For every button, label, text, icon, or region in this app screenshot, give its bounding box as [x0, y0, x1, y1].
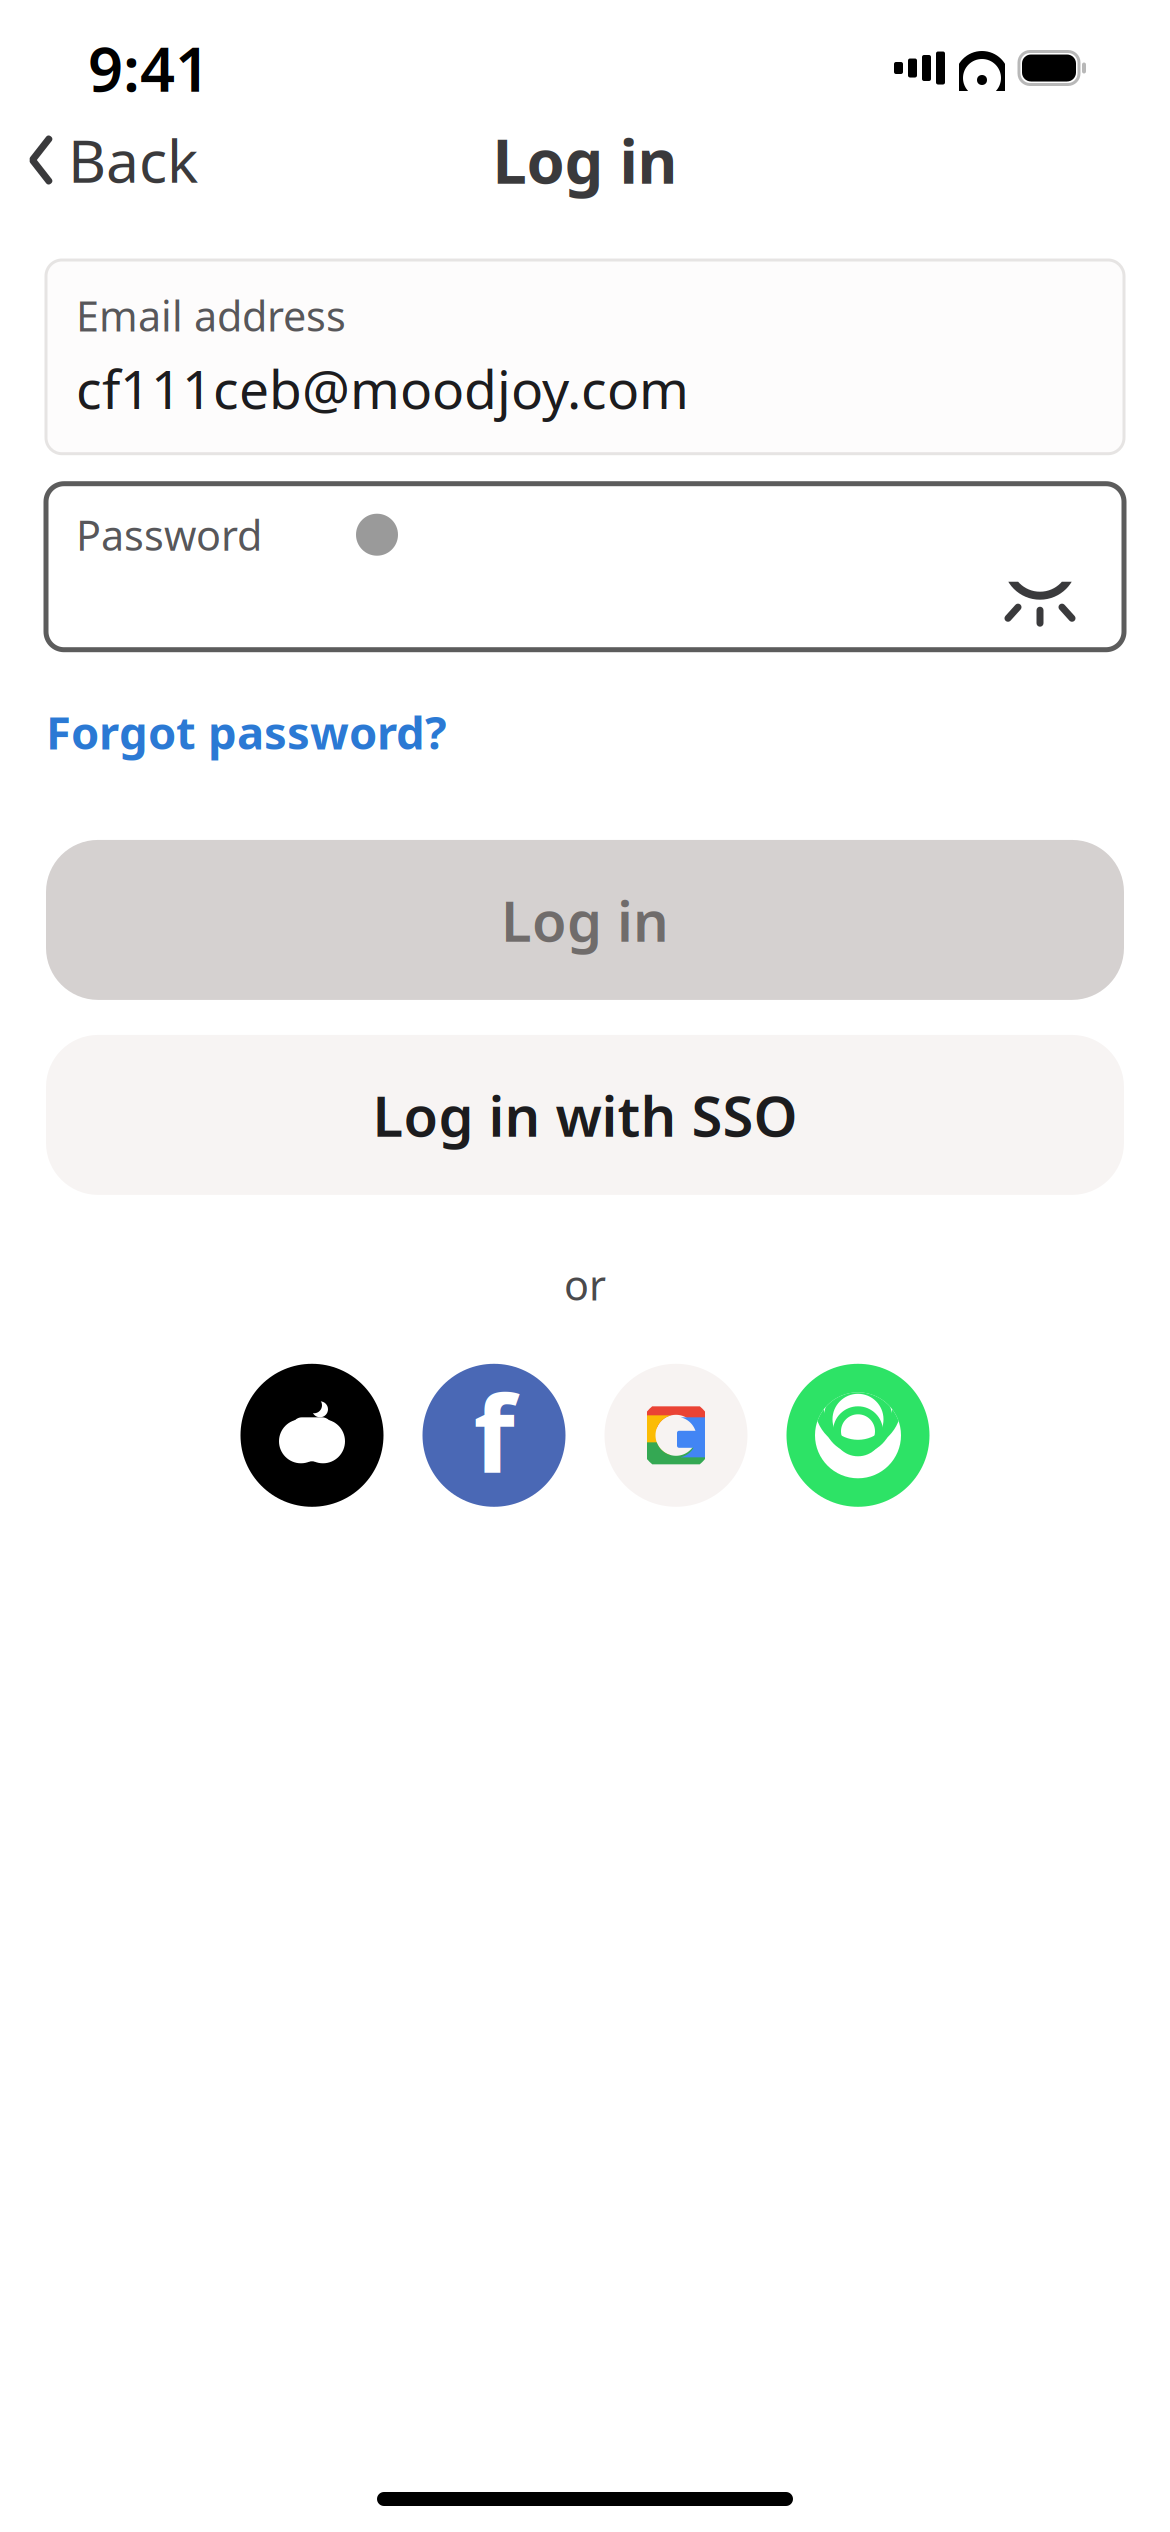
button[interactable]: Continue with Google: [604, 1364, 747, 1507]
staticText: Log in: [492, 119, 677, 201]
staticText: Password: [76, 507, 262, 562]
staticText: cf111ceb@moodjoy.com: [76, 353, 689, 424]
staticText: or: [564, 1257, 606, 1312]
staticText: Back: [68, 121, 198, 199]
button[interactable]: Back: [18, 107, 208, 213]
staticText: Forgot password?: [46, 702, 447, 762]
button[interactable]: Log in: [46, 840, 1124, 1000]
button[interactable]: Forgot password?: [46, 702, 447, 762]
button[interactable]: Log in with SSO: [46, 1035, 1124, 1195]
button[interactable]: Email address: [46, 260, 1124, 454]
staticText: Log in: [501, 883, 669, 957]
button[interactable]: Password: [46, 484, 1124, 650]
button[interactable]: Continue with Apple: [240, 1364, 383, 1507]
staticText: Email address: [76, 288, 346, 343]
button[interactable]: Continue with Facebook: [422, 1364, 565, 1507]
staticText: 9:41: [88, 27, 210, 109]
staticText: f: [473, 1360, 514, 1502]
staticText: Log in with SSO: [372, 1078, 797, 1152]
button[interactable]: Continue with Spotify: [786, 1364, 929, 1507]
